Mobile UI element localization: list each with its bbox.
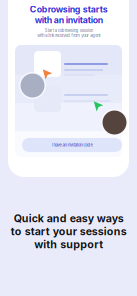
- staticText: I have an invitation code: [51, 142, 92, 147]
- button[interactable]: I have an invitation code: [22, 138, 122, 152]
- staticText: Cobrowsing starts with an invitation: [29, 4, 107, 25]
- staticText: Start a cobrowsing session with a link r…: [37, 28, 100, 38]
- staticText: Quick and easy ways to start your sessio…: [10, 212, 126, 251]
